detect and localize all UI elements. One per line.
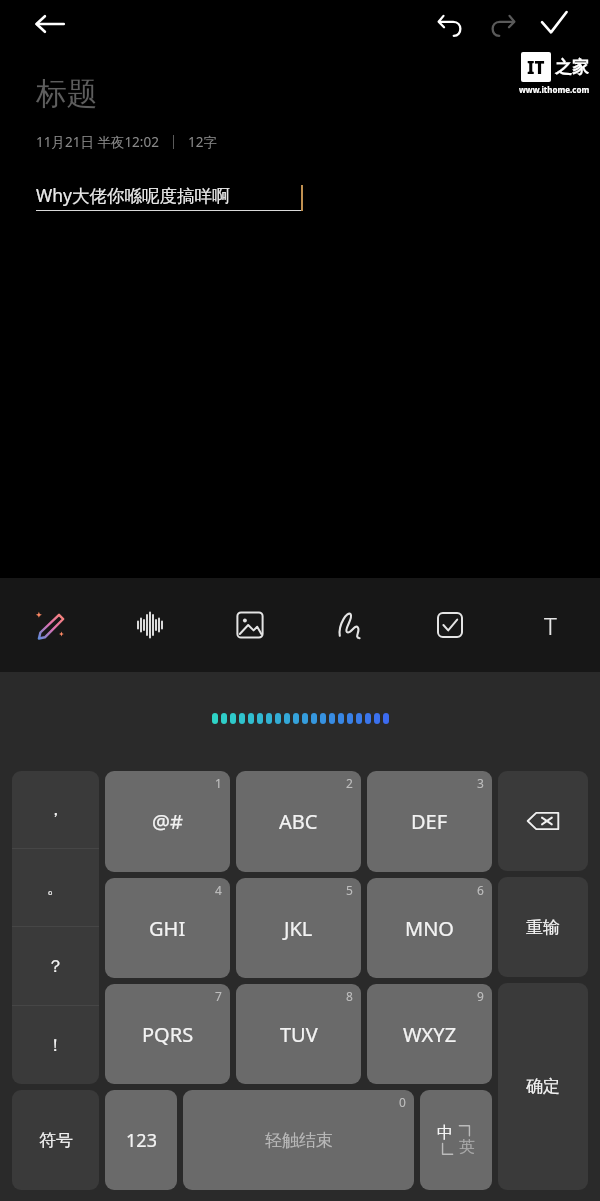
button[interactable]: 符号 — [12, 1090, 99, 1190]
staticText: 12字 — [188, 133, 217, 151]
staticText: 7 — [215, 988, 222, 1004]
button[interactable]: Backspace — [498, 771, 588, 871]
button[interactable]: Undo — [424, 0, 476, 48]
staticText: MNO — [405, 915, 454, 942]
button[interactable]: Checklist — [400, 578, 500, 672]
button[interactable]: AI writing — [0, 578, 100, 672]
staticText: 符号 — [39, 1130, 73, 1151]
staticText: 3 — [477, 775, 484, 791]
staticText: 之家 — [555, 57, 589, 78]
button[interactable]: Back — [26, 0, 74, 48]
button[interactable]: Text style — [500, 578, 600, 672]
staticText: ？ — [47, 956, 64, 977]
staticText: 1 — [215, 775, 222, 791]
button[interactable]: 123 — [105, 1090, 177, 1190]
button[interactable]: 8 — [236, 984, 361, 1084]
staticText: ABC — [279, 808, 318, 835]
staticText: JKL — [284, 915, 313, 942]
button[interactable]: 9 — [367, 984, 492, 1084]
staticText: DEF — [411, 808, 448, 835]
staticText: T — [544, 609, 557, 642]
staticText: GHI — [149, 915, 186, 942]
staticText: 0 — [399, 1094, 406, 1110]
staticText: WXYZ — [403, 1021, 457, 1048]
staticText: PQRS — [142, 1021, 194, 1048]
button[interactable]: 确定 — [498, 983, 588, 1190]
staticText: 6 — [477, 882, 484, 898]
button[interactable]: ， — [12, 771, 99, 848]
button[interactable]: 。 — [12, 849, 99, 926]
button[interactable]: 3 — [367, 771, 492, 872]
staticText: 4 — [215, 882, 222, 898]
button[interactable]: 5 — [236, 878, 361, 978]
staticText: 重输 — [526, 917, 560, 938]
button[interactable]: Switch Chinese English — [420, 1090, 492, 1190]
staticText: 确定 — [526, 1076, 560, 1097]
button[interactable]: 4 — [105, 878, 230, 978]
staticText: @# — [152, 808, 183, 835]
staticText: 中 — [437, 1123, 453, 1143]
staticText: 9 — [477, 988, 484, 1004]
button[interactable]: 2 — [236, 771, 361, 872]
staticText: TUV — [280, 1021, 318, 1048]
staticText: 123 — [126, 1128, 157, 1153]
staticText: 标题 — [36, 74, 98, 113]
button[interactable]: Image — [200, 578, 300, 672]
button[interactable]: 0 — [183, 1090, 414, 1190]
button[interactable]: 7 — [105, 984, 230, 1084]
staticText: www.ithome.com — [519, 84, 590, 95]
button[interactable]: ？ — [12, 927, 99, 1005]
button[interactable]: Done — [528, 0, 580, 48]
staticText: 8 — [346, 988, 353, 1004]
button[interactable]: Voice — [100, 578, 200, 672]
button[interactable]: Redo — [476, 0, 528, 48]
button[interactable]: 重输 — [498, 877, 588, 977]
staticText: 。 — [47, 877, 64, 898]
staticText: 英 — [459, 1137, 475, 1157]
staticText: 2 — [346, 775, 353, 791]
staticText: ， — [47, 799, 64, 820]
staticText: 5 — [346, 882, 353, 898]
staticText: 轻触结束 — [265, 1130, 333, 1151]
button[interactable]: 1 — [105, 771, 230, 872]
staticText: IT — [527, 56, 545, 79]
staticText: Why大佬你喺呢度搞咩啊 — [36, 183, 230, 207]
staticText: 11月21日 半夜12:02 — [36, 133, 159, 151]
staticText: ！ — [47, 1035, 64, 1056]
button[interactable]: ！ — [12, 1006, 99, 1084]
button[interactable]: Handwriting — [300, 578, 400, 672]
button[interactable]: 6 — [367, 878, 492, 978]
